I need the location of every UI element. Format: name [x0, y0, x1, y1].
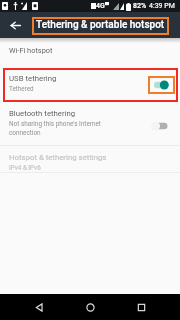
- staticText: Bluetooth tethering: [9, 109, 76, 118]
- staticText: USB tethering: [9, 74, 57, 83]
- staticText: 82%: [133, 2, 147, 10]
- button[interactable]: Home: [78, 295, 102, 319]
- button[interactable]: USB tethering on: [152, 78, 172, 92]
- staticText: 4G: [96, 2, 105, 10]
- button[interactable]: Navigate up: [6, 16, 24, 34]
- button[interactable]: USB tethering: [0, 70, 180, 103]
- button[interactable]: Bluetooth tethering: [0, 106, 180, 144]
- button[interactable]: Recent apps: [129, 295, 153, 319]
- staticText: Hotspot & tethering settings: [9, 153, 107, 162]
- staticText: Tethered: [9, 85, 34, 92]
- button[interactable]: Back: [27, 295, 51, 319]
- staticText: 4:39 PM: [149, 2, 175, 10]
- staticText: IPv4 & IPv6: [9, 164, 41, 171]
- button[interactable]: Hotspot & tethering settings: [0, 149, 180, 173]
- staticText: Not sharing this phone's Internet connec…: [9, 120, 101, 137]
- staticText: Tethering & portable hotspot: [36, 19, 165, 31]
- button[interactable]: Bluetooth tethering off: [150, 119, 172, 133]
- staticText: Wi-Fi hotspot: [9, 46, 53, 55]
